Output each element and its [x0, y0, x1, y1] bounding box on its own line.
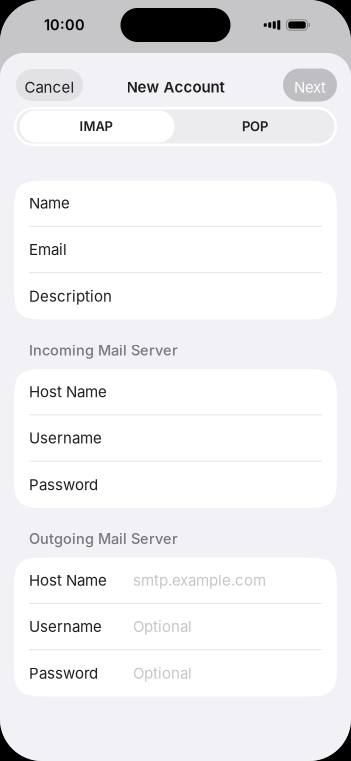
- button[interactable]: POP: [175, 109, 334, 143]
- button[interactable]: Description: [14, 273, 337, 319]
- staticText: Description: [29, 287, 112, 305]
- staticText: Host Name: [29, 571, 107, 589]
- button[interactable]: Email: [14, 227, 337, 272]
- staticText: Password: [29, 664, 98, 682]
- staticText: Cancel: [24, 78, 74, 96]
- button[interactable]: Next: [283, 68, 337, 101]
- button[interactable]: Password: [14, 462, 337, 508]
- staticText: POP: [242, 119, 268, 134]
- staticText: Optional: [133, 617, 192, 636]
- staticText: smtp.example.com: [133, 571, 266, 589]
- staticText: New Account: [126, 78, 224, 96]
- staticText: Incoming Mail Server: [29, 341, 178, 359]
- button[interactable]: Password: [14, 650, 337, 697]
- button[interactable]: Host Name: [14, 558, 337, 603]
- button[interactable]: IMAP: [16, 109, 175, 143]
- staticText: Host Name: [29, 383, 107, 401]
- staticText: Username: [29, 429, 102, 447]
- button[interactable]: Cancel: [16, 69, 83, 101]
- button[interactable]: Host Name: [14, 369, 337, 414]
- staticText: Name: [29, 194, 70, 212]
- staticText: Outgoing Mail Server: [29, 530, 178, 547]
- staticText: Password: [29, 476, 98, 494]
- staticText: Optional: [133, 664, 192, 682]
- button[interactable]: Name: [14, 180, 337, 226]
- button[interactable]: Username: [14, 415, 337, 461]
- staticText: Next: [294, 78, 326, 96]
- staticText: Username: [29, 617, 102, 636]
- button[interactable]: Username: [14, 604, 337, 649]
- staticText: IMAP: [79, 119, 112, 134]
- staticText: Email: [29, 240, 67, 258]
- staticText: 10:00: [44, 16, 85, 34]
